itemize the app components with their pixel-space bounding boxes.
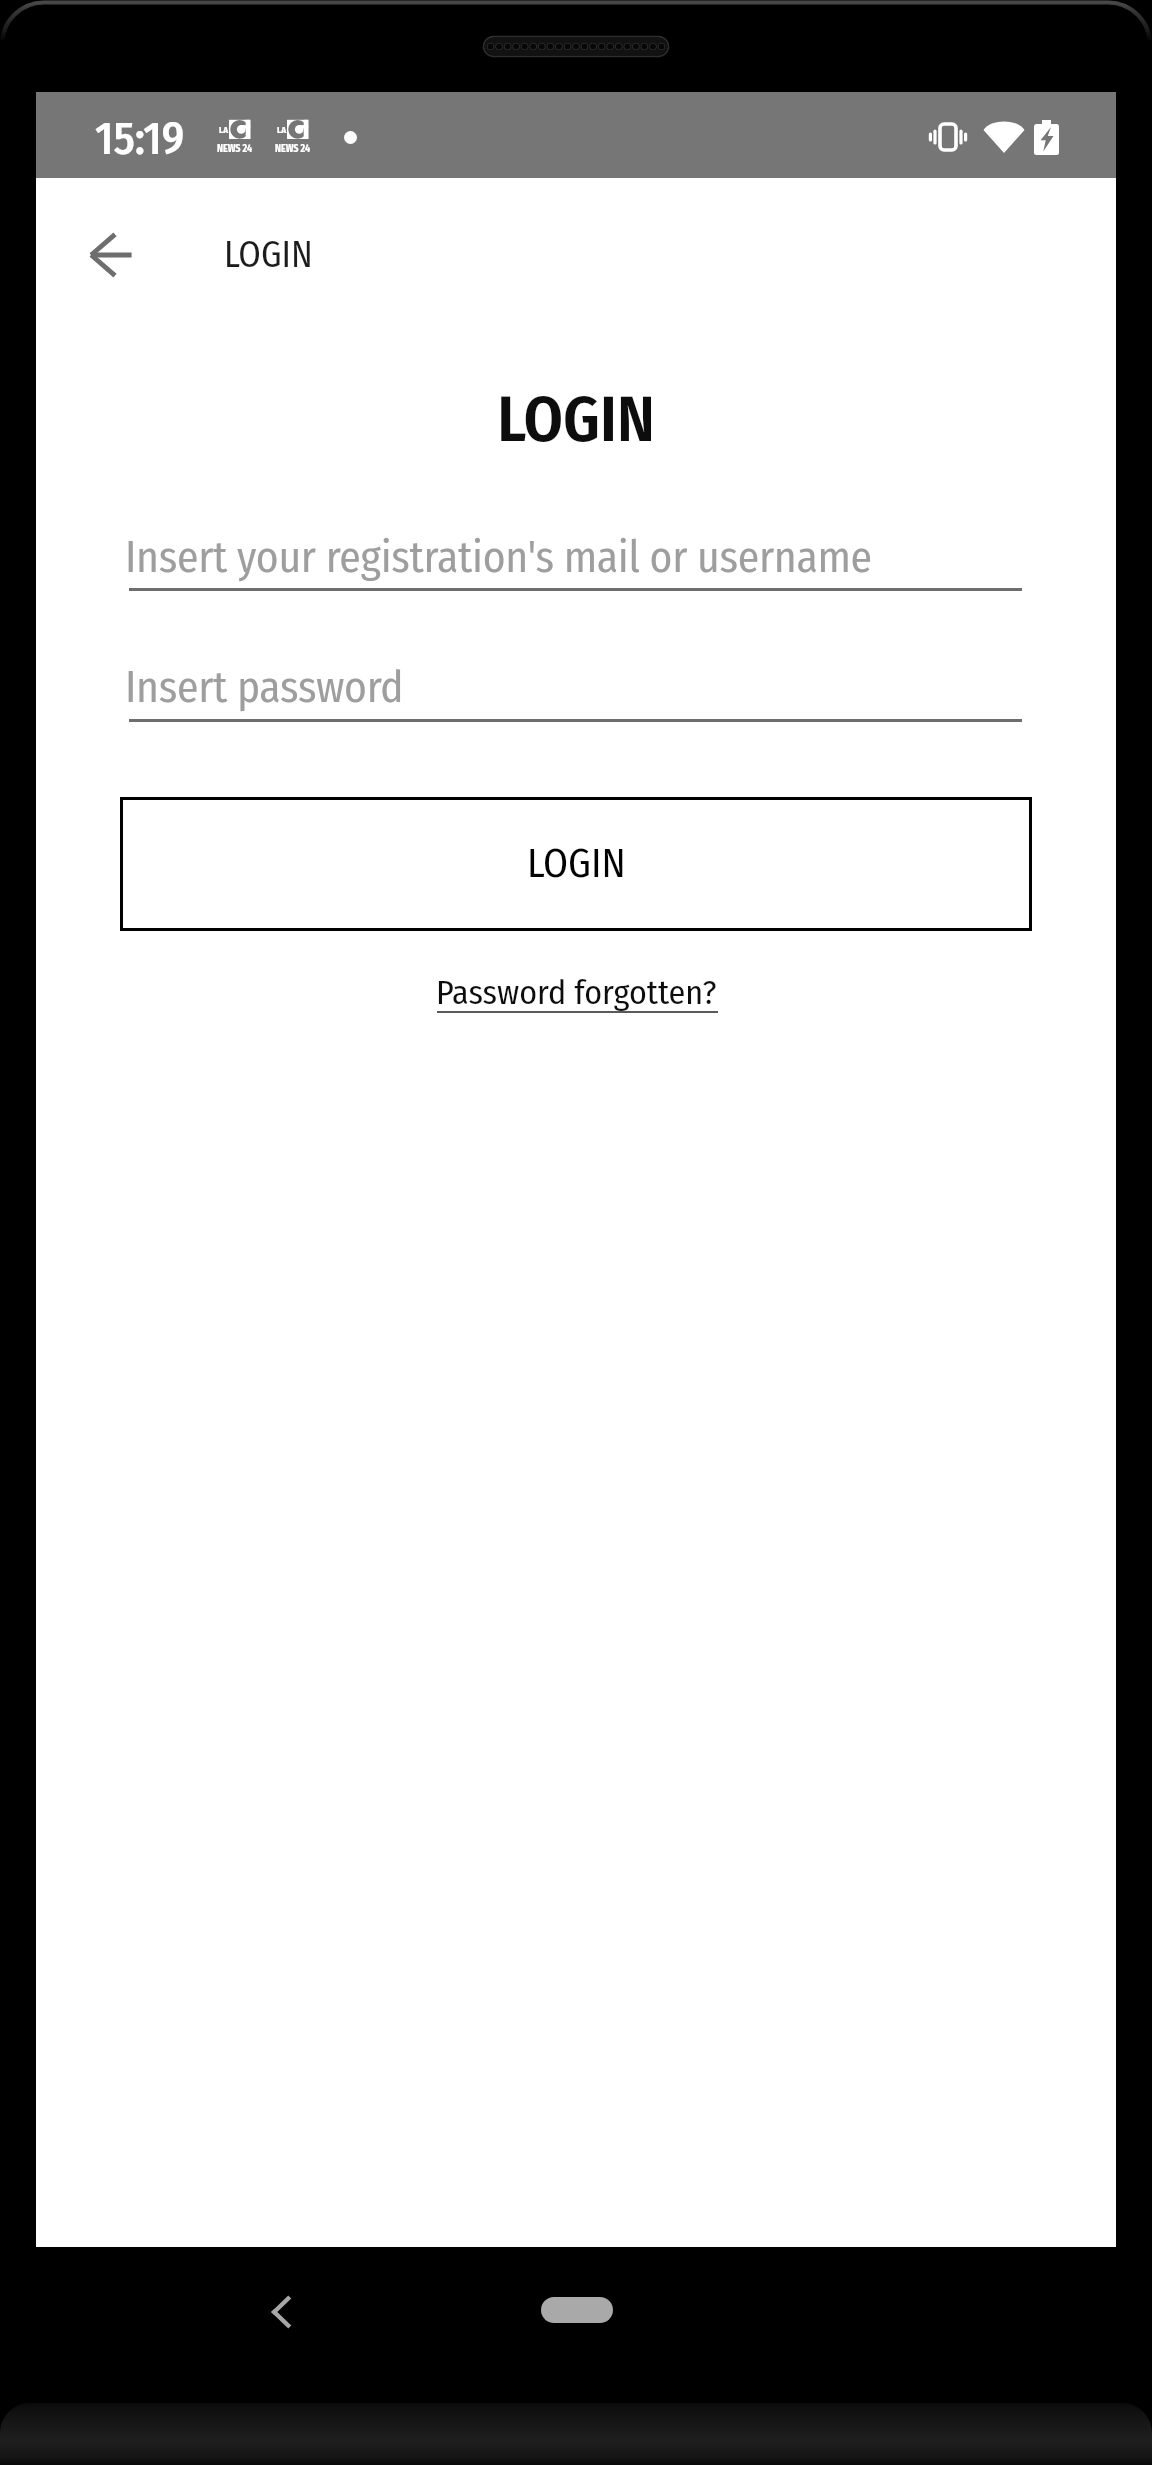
button[interactable]: Password forgotten? — [436, 972, 717, 1015]
button[interactable]: LOGIN — [120, 797, 1032, 931]
button[interactable]: Back — [57, 202, 165, 308]
button[interactable] — [129, 643, 1022, 725]
staticText: 15:19 — [95, 112, 185, 166]
staticText: LA — [219, 125, 229, 136]
button[interactable]: Back — [252, 2282, 312, 2342]
button[interactable]: Home — [541, 2297, 613, 2323]
staticText: NEWS 24 — [217, 143, 253, 155]
staticText: LA — [277, 125, 287, 136]
staticText: LOGIN — [36, 382, 1116, 458]
button[interactable] — [129, 513, 1022, 594]
staticText: Insert password — [125, 661, 404, 713]
staticText: Insert your registration's mail or usern… — [125, 531, 872, 583]
staticText: LOGIN — [224, 233, 313, 276]
staticText: LOGIN — [527, 840, 626, 888]
staticText: Password forgotten? — [436, 972, 717, 1013]
staticText: NEWS 24 — [275, 143, 311, 155]
